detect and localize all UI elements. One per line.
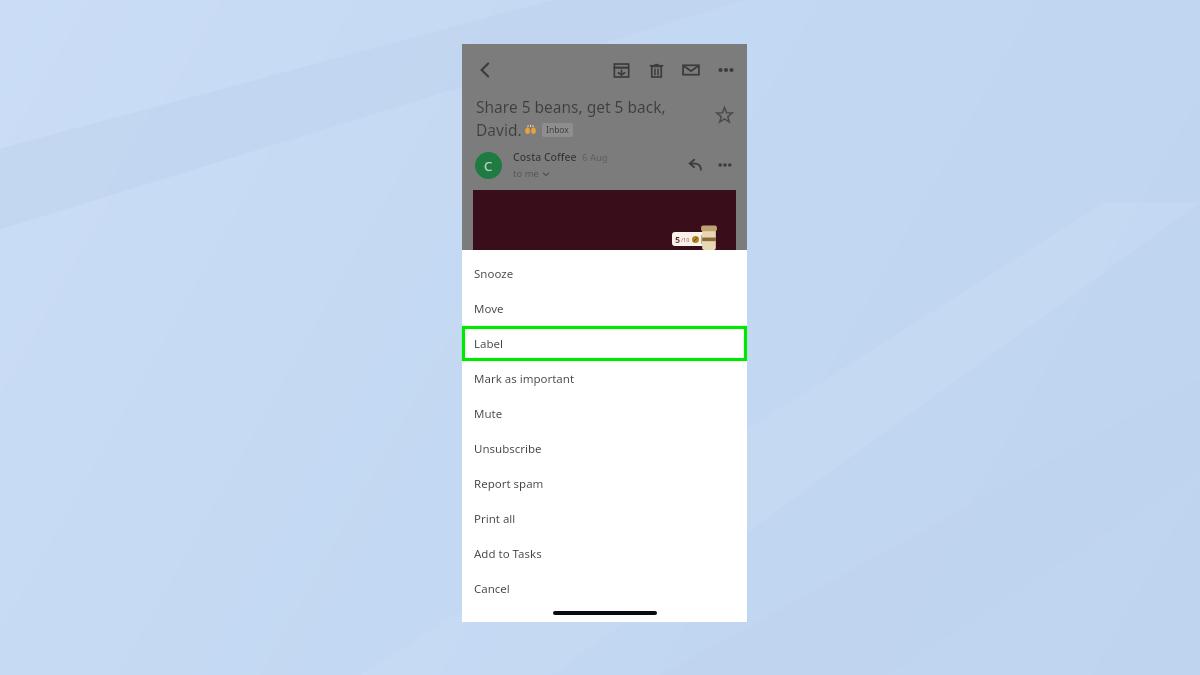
button[interactable]: Report spam: [462, 466, 747, 501]
staticText: 2: [704, 233, 710, 245]
staticText: Inbox: [546, 124, 569, 136]
staticText: Unsubscribe: [474, 441, 542, 457]
staticText: Mark as important: [474, 371, 575, 387]
staticText: Label: [474, 336, 504, 352]
button[interactable]: Label: [462, 326, 747, 361]
button[interactable]: More options: [709, 53, 743, 87]
staticText: Move: [474, 301, 504, 317]
staticText: Mute: [474, 406, 503, 422]
staticText: C: [484, 157, 493, 175]
button[interactable]: Star: [709, 100, 739, 130]
button[interactable]: Mark unread: [674, 53, 708, 87]
button[interactable]: Back: [468, 53, 502, 87]
button[interactable]: More: [711, 151, 739, 179]
button[interactable]: Reply: [681, 151, 709, 179]
staticText: to me: [513, 167, 539, 180]
button[interactable]: Archive: [604, 53, 638, 87]
staticText: 5: [675, 233, 681, 245]
staticText: Add to Tasks: [474, 546, 542, 562]
staticText: Costa Coffee: [513, 150, 577, 164]
staticText: Share 5 beans, get 5 back,: [476, 96, 666, 117]
button[interactable]: Mark as important: [462, 361, 747, 396]
button[interactable]: Move: [462, 291, 747, 326]
staticText: David.: [476, 119, 522, 140]
button[interactable]: Delete: [639, 53, 673, 87]
button[interactable]: Print all: [462, 501, 747, 536]
button[interactable]: Snooze: [462, 256, 747, 291]
staticText: Print all: [474, 511, 516, 527]
staticText: 6 Aug: [582, 151, 608, 164]
button[interactable]: Cancel: [462, 571, 747, 606]
button[interactable]: Mute: [462, 396, 747, 431]
staticText: /10: [681, 236, 690, 243]
staticText: Snooze: [474, 266, 514, 282]
staticText: Report spam: [474, 476, 544, 492]
button[interactable]: Unsubscribe: [462, 431, 747, 466]
staticText: Cancel: [474, 581, 510, 597]
button[interactable]: Add to Tasks: [462, 536, 747, 571]
